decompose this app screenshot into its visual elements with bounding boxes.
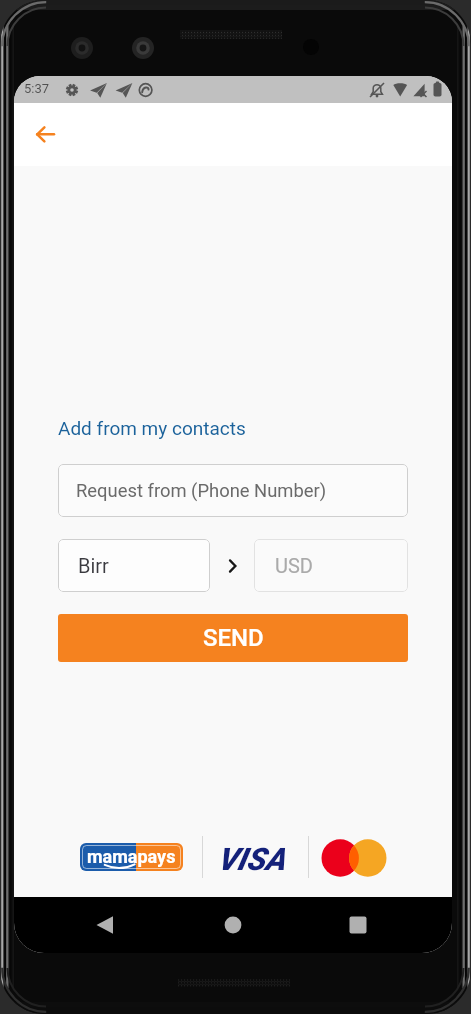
- staticText: Birr: [78, 554, 109, 577]
- button[interactable]: Home: [204, 897, 262, 953]
- staticText: SEND: [203, 624, 264, 652]
- button[interactable]: Add from my contacts: [58, 417, 246, 439]
- button[interactable]: USD: [254, 539, 408, 592]
- button[interactable]: Birr: [58, 539, 210, 592]
- button[interactable]: Request from (Phone Number): [58, 464, 408, 517]
- button[interactable]: SEND: [58, 614, 408, 662]
- button[interactable]: Swap currency: [216, 539, 252, 592]
- staticText: Request from (Phone Number): [76, 480, 327, 502]
- staticText: USD: [275, 554, 313, 577]
- staticText: 5:37: [24, 81, 50, 96]
- staticText: Add from my contacts: [58, 417, 246, 439]
- button[interactable]: Back: [76, 897, 134, 953]
- button[interactable]: Recent apps: [329, 897, 387, 953]
- button[interactable]: Back: [25, 113, 67, 155]
- staticText: VISA: [217, 841, 286, 873]
- staticText: mamapays: [87, 846, 176, 867]
